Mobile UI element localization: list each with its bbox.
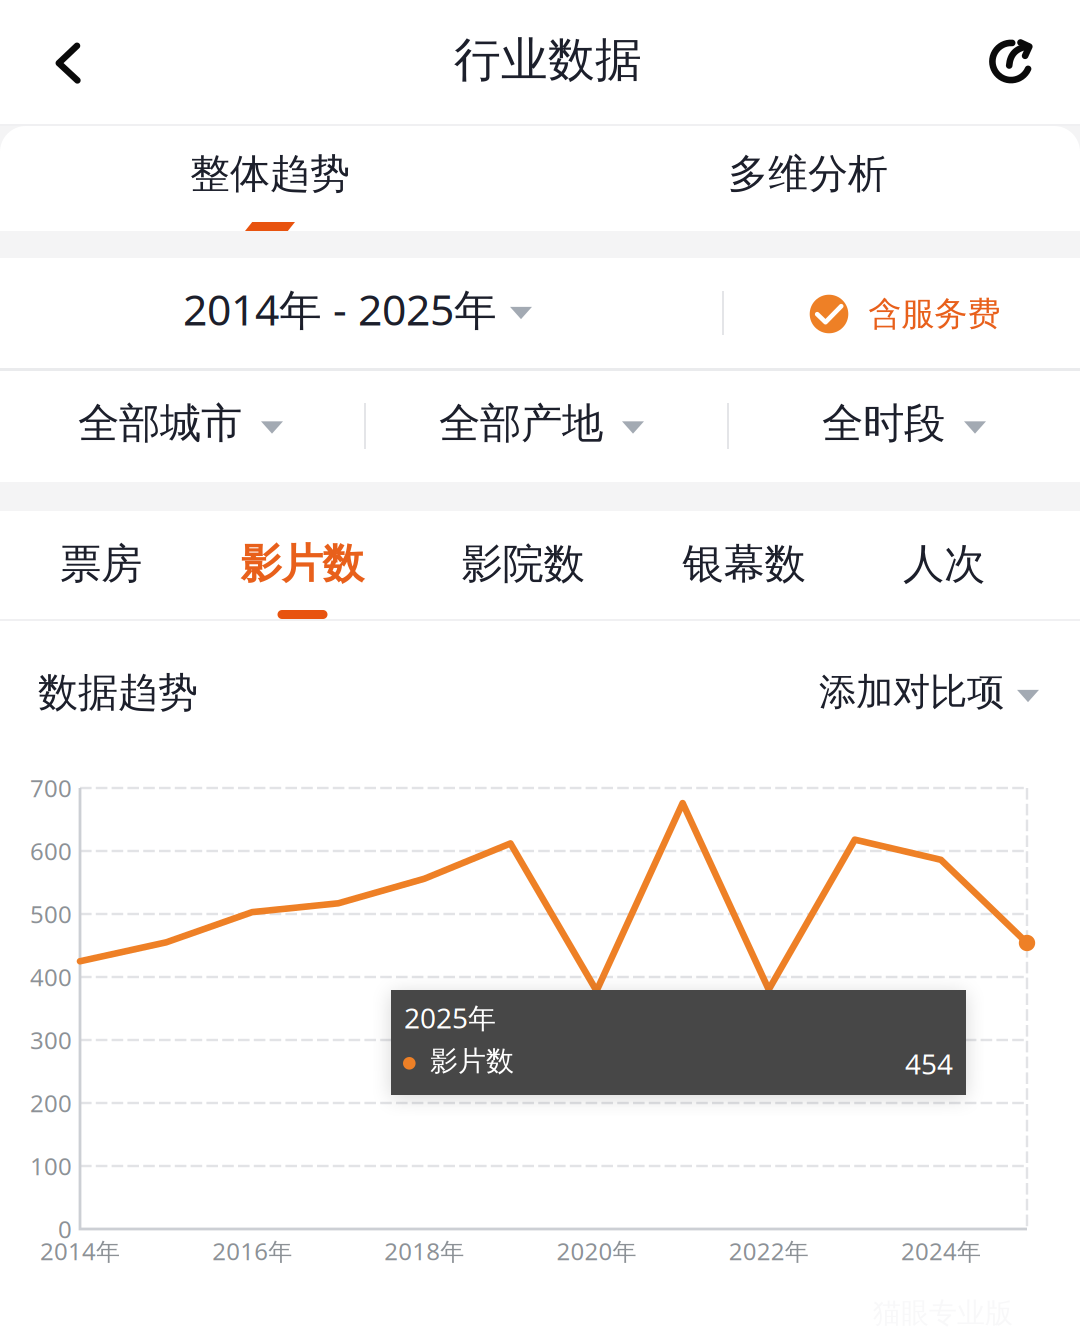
button[interactable]: 全部城市 — [78, 369, 301, 482]
button[interactable]: 整体趋势 — [55, 126, 485, 231]
staticText: 0 — [58, 1213, 72, 1245]
staticText: 2018年 — [384, 1235, 464, 1267]
staticText: 2020年 — [556, 1235, 636, 1267]
staticText: 人次 — [903, 539, 985, 589]
staticText: 影片数 — [430, 1044, 514, 1078]
button[interactable]: 添加对比项 — [779, 647, 1039, 737]
staticText: 影片数 — [240, 539, 363, 589]
staticText: 全部城市 — [78, 398, 242, 449]
button[interactable]: Share — [958, 0, 1068, 126]
staticText: 多维分析 — [728, 149, 888, 198]
staticText: 300 — [30, 1024, 72, 1056]
staticText: 银幕数 — [682, 539, 805, 589]
staticText: 2014年 — [40, 1235, 120, 1267]
staticText: 500 — [30, 898, 72, 930]
button[interactable]: 影院数 — [423, 511, 623, 620]
button[interactable]: 含服务费 — [755, 258, 1055, 368]
staticText: 454 — [905, 1045, 953, 1082]
staticText: 2014年 - 2025年 — [183, 281, 497, 337]
button[interactable]: 人次 — [844, 511, 1044, 620]
staticText: 影院数 — [461, 539, 584, 589]
staticText: 全部产地 — [439, 398, 603, 449]
staticText: 600 — [30, 835, 72, 867]
button[interactable]: 票房 — [1, 511, 201, 620]
staticText: 2025年 — [404, 999, 496, 1036]
button[interactable]: 全部产地 — [439, 369, 662, 482]
staticText: 整体趋势 — [190, 149, 350, 198]
staticText: 2024年 — [901, 1235, 981, 1267]
staticText: 2016年 — [212, 1235, 292, 1267]
staticText: 全时段 — [822, 398, 945, 449]
staticText: 700 — [30, 772, 72, 804]
staticText: 2022年 — [729, 1235, 809, 1267]
staticText: 含服务费 — [868, 293, 1000, 334]
staticText: 100 — [30, 1150, 72, 1182]
button[interactable]: 全时段 — [822, 369, 1004, 482]
button[interactable]: 2014年 - 2025年 — [10, 258, 705, 368]
button[interactable]: 影片数 — [202, 511, 402, 620]
staticText: 200 — [30, 1087, 72, 1119]
staticText: 400 — [30, 961, 72, 993]
button[interactable]: 银幕数 — [644, 511, 844, 620]
staticText: 添加对比项 — [819, 669, 1004, 715]
button[interactable]: 多维分析 — [596, 126, 1026, 231]
staticText: 数据趋势 — [38, 668, 198, 717]
button[interactable]: Back — [13, 0, 123, 126]
staticText: 票房 — [60, 539, 142, 589]
staticText: 行业数据 — [454, 31, 642, 89]
